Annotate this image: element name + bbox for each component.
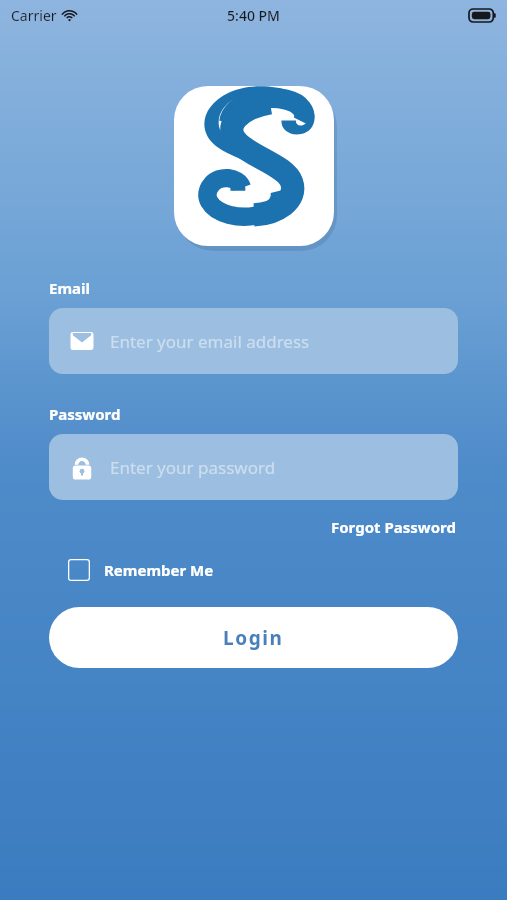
staticText: Email xyxy=(49,278,90,298)
staticText: Forgot Password xyxy=(331,517,456,537)
staticText: Remember Me xyxy=(104,560,214,580)
button[interactable]: Login xyxy=(49,607,458,668)
button[interactable]: Password xyxy=(49,434,458,500)
button[interactable]: Forgot Password xyxy=(329,515,458,539)
other: Email xyxy=(68,327,96,355)
staticText: Enter your email address xyxy=(110,330,310,353)
staticText: Carrier xyxy=(11,6,57,25)
button[interactable]: Remember Me xyxy=(49,557,222,583)
button[interactable]: Email xyxy=(49,308,458,374)
staticText: Enter your password xyxy=(110,456,276,479)
staticText: Login xyxy=(223,625,284,651)
staticText: Password xyxy=(49,404,121,424)
staticText: 5:40 PM xyxy=(227,6,280,25)
other: Password xyxy=(68,453,96,481)
